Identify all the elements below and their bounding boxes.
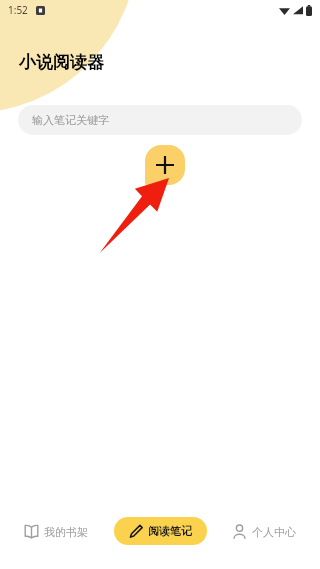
button[interactable]: 我的书架 [18, 518, 94, 545]
button[interactable]: 阅读笔记 [114, 517, 207, 545]
staticText: 阅读笔记 [148, 524, 192, 538]
staticText: 个人中心 [252, 525, 296, 539]
button[interactable]: 输入笔记关键字 [18, 105, 302, 135]
staticText: 小说阅读器 [19, 52, 104, 73]
staticText: 1:52 [8, 3, 28, 17]
button[interactable]: 新增笔记 [145, 145, 185, 185]
staticText: 我的书架 [44, 525, 88, 539]
staticText: 输入笔记关键字 [32, 113, 109, 127]
button[interactable]: 个人中心 [226, 518, 302, 545]
